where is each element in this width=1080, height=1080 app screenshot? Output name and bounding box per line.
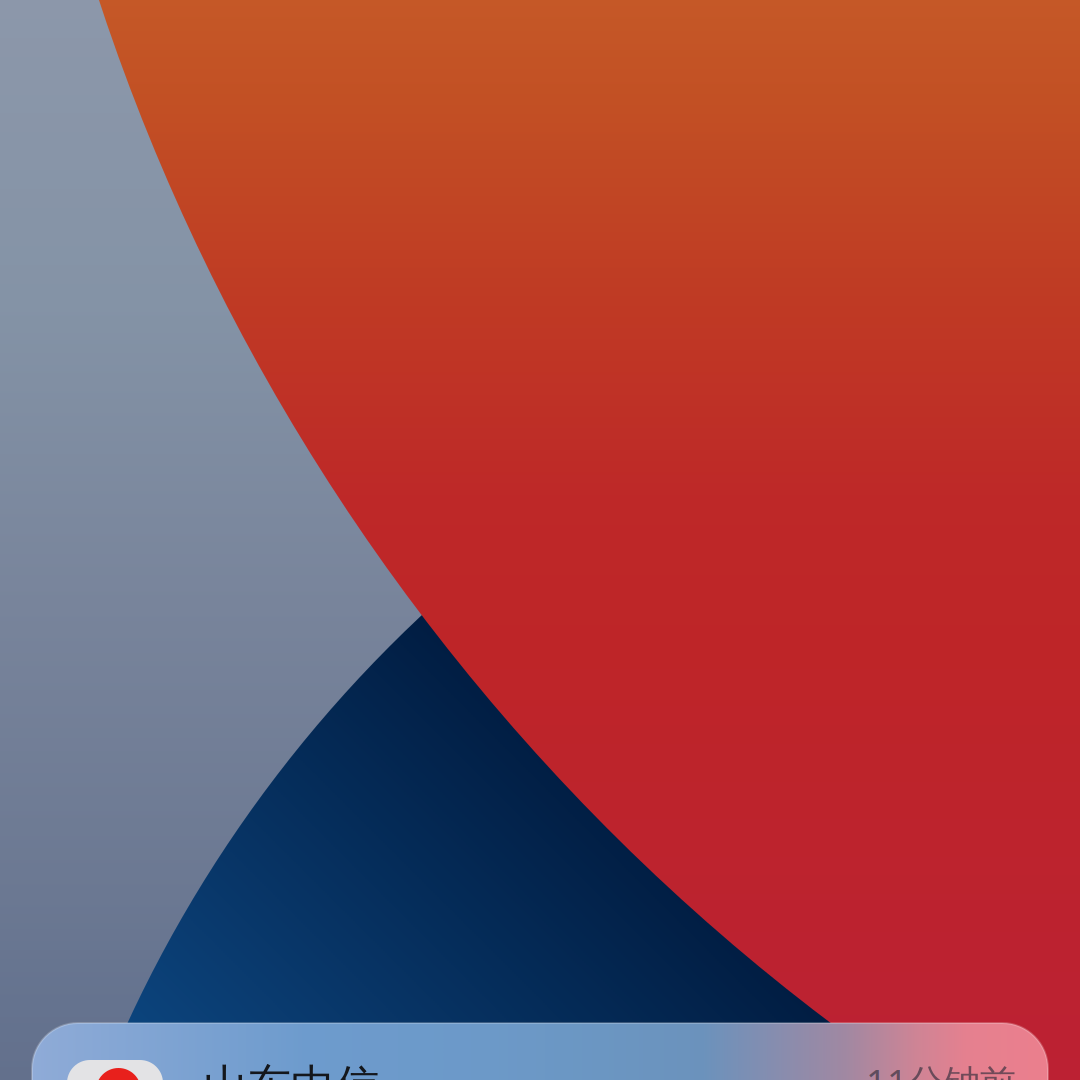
button[interactable]: 山东中信 [32,1023,1048,1080]
staticText: 11分钟前 [866,1058,1016,1080]
staticText: 山东中信 [203,1059,379,1080]
